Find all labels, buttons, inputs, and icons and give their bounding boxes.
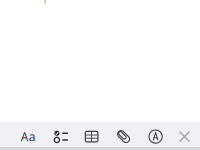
button[interactable]: Markup	[141, 125, 171, 149]
staticText: Aa	[21, 129, 36, 144]
button[interactable]: Checklist	[46, 125, 76, 149]
button[interactable]: Text format	[13, 125, 43, 149]
button[interactable]: Close	[169, 125, 199, 149]
button[interactable]: Attach file	[109, 125, 139, 149]
button[interactable]: Table	[77, 125, 107, 149]
